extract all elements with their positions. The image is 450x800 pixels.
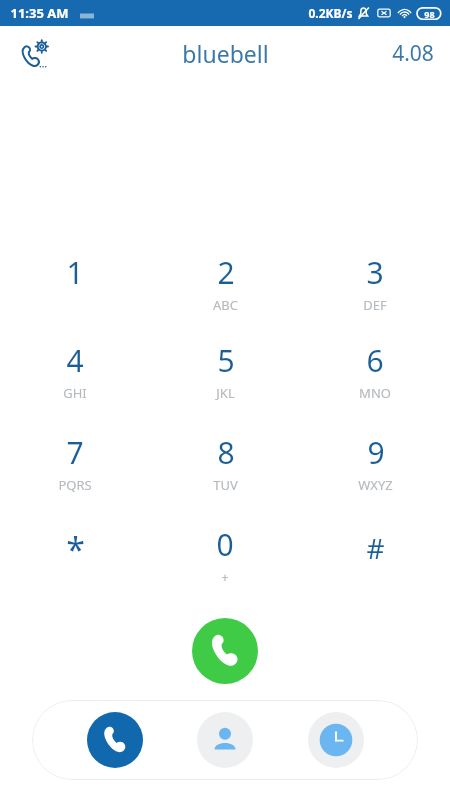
button[interactable]: 4.08 xyxy=(392,39,434,68)
button[interactable]: Call xyxy=(192,618,258,684)
staticText: ABC xyxy=(213,296,238,314)
staticText: TUV xyxy=(213,476,238,494)
staticText: 3 xyxy=(366,252,384,293)
staticText: DEF xyxy=(363,296,387,314)
staticText: 0.2KB/s xyxy=(308,5,353,21)
staticText: 4.08 xyxy=(392,39,434,68)
button[interactable]: Contacts xyxy=(197,712,253,768)
staticText: 2 xyxy=(217,252,235,293)
staticText: 8 xyxy=(217,432,235,473)
button[interactable]: Call settings xyxy=(14,31,58,75)
staticText: JKL xyxy=(216,384,235,402)
button[interactable]: # xyxy=(300,524,450,616)
staticText: + xyxy=(221,568,229,586)
staticText: bluebell xyxy=(182,38,269,69)
button[interactable]: Recent calls xyxy=(308,712,364,768)
staticText: # xyxy=(366,529,385,567)
button[interactable]: 1 xyxy=(0,248,150,340)
staticText: 11:35 AM xyxy=(10,4,69,22)
staticText: * xyxy=(66,526,85,572)
button[interactable]: 2 xyxy=(150,248,300,340)
staticText: MNO xyxy=(359,384,391,402)
button[interactable]: 9 xyxy=(300,432,450,524)
staticText: PQRS xyxy=(58,476,92,494)
staticText: 9 xyxy=(367,432,385,473)
button[interactable]: * xyxy=(0,524,150,616)
staticText: 4 xyxy=(66,340,84,381)
staticText: 0 xyxy=(216,524,234,565)
button[interactable]: 7 xyxy=(0,432,150,524)
staticText: 5 xyxy=(217,340,235,381)
button[interactable]: 5 xyxy=(150,340,300,432)
staticText: 6 xyxy=(366,340,384,381)
button[interactable]: 8 xyxy=(150,432,300,524)
staticText: WXYZ xyxy=(358,476,393,494)
staticText: 7 xyxy=(66,432,84,473)
staticText: GHI xyxy=(63,384,87,402)
button[interactable]: 4 xyxy=(0,340,150,432)
button[interactable]: 6 xyxy=(300,340,450,432)
button[interactable]: Dialer xyxy=(87,712,143,768)
staticText: 98 xyxy=(424,8,435,20)
staticText: 1 xyxy=(66,252,84,293)
button[interactable]: 0 xyxy=(150,524,300,616)
button[interactable]: 3 xyxy=(300,248,450,340)
